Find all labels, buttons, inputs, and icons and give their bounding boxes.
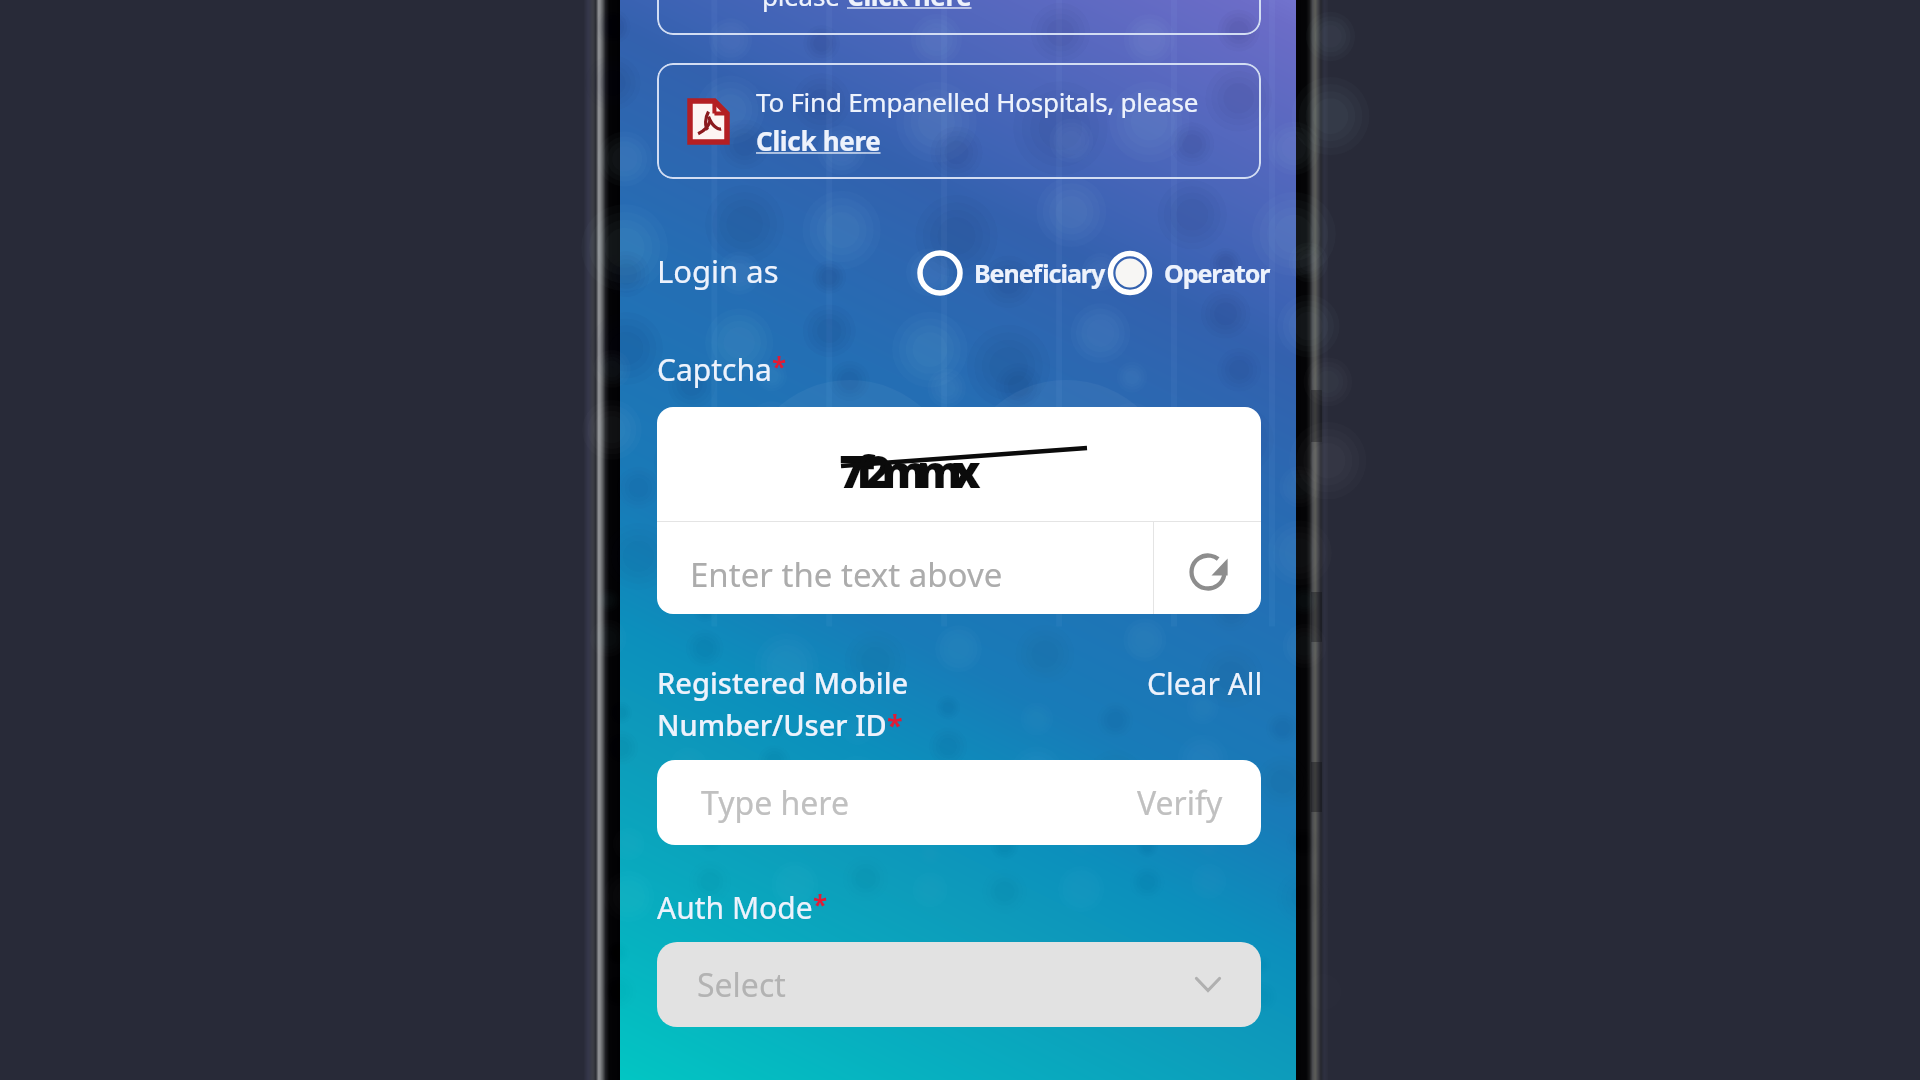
staticText: Click here: [756, 123, 881, 158]
staticText: Click here: [847, 0, 972, 13]
staticText: Verify: [1137, 781, 1223, 825]
button[interactable]: Verify: [1121, 771, 1261, 835]
staticText: Number/User ID: [657, 705, 887, 744]
staticText: *: [772, 349, 787, 384]
staticText: Beneficiary: [974, 256, 1105, 290]
button[interactable]: Select: [657, 942, 1261, 1027]
button[interactable]: Type here: [657, 760, 1261, 845]
button[interactable]: Clear All: [1141, 657, 1269, 710]
button[interactable]: To Find Empanelled Hospitals, please: [657, 63, 1261, 179]
staticText: Login as: [657, 250, 779, 292]
staticText: Clear All: [1147, 663, 1263, 704]
staticText: Operator: [1164, 256, 1270, 290]
staticText: *: [813, 887, 828, 922]
staticText: please: [762, 0, 847, 13]
button[interactable]: please: [657, 0, 1261, 35]
staticText: *: [887, 705, 903, 744]
button[interactable]: Refresh captcha: [1154, 522, 1261, 614]
button[interactable]: Beneficiary: [916, 249, 1105, 297]
staticText: To Find Empanelled Hospitals, please: [756, 84, 1199, 119]
staticText: Auth Mode: [657, 887, 813, 928]
staticText: Select: [697, 963, 786, 1007]
button[interactable]: Operator: [1106, 249, 1270, 297]
staticText: Enter the text above: [690, 552, 1003, 597]
staticText: Type here: [701, 781, 849, 825]
staticText: Captcha: [657, 349, 772, 390]
staticText: Registered Mobile: [657, 663, 909, 702]
staticText: 7f2mmx: [839, 440, 972, 501]
button[interactable]: Enter the text above: [657, 522, 1153, 614]
